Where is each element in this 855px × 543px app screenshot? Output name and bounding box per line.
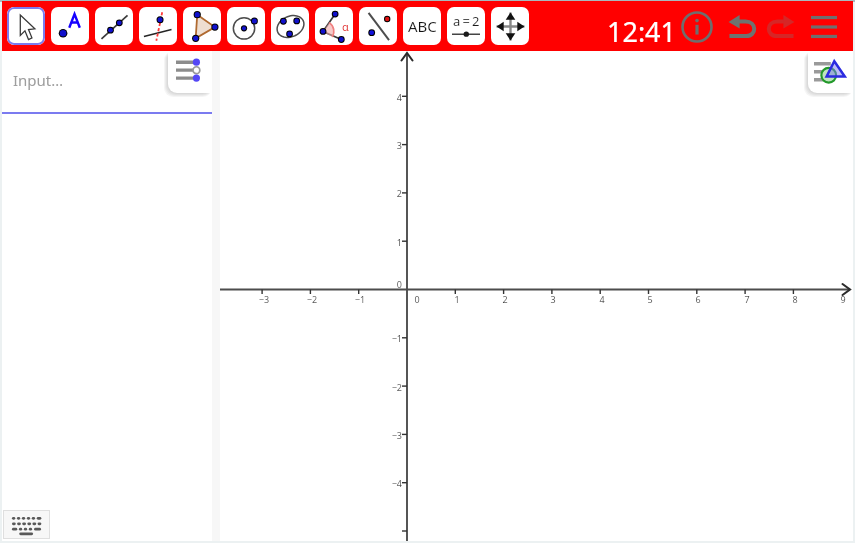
staticText: −3 bbox=[362, 429, 402, 441]
staticText: 0 bbox=[397, 293, 437, 305]
staticText: 0 bbox=[362, 278, 402, 290]
staticText: −1 bbox=[362, 332, 402, 344]
button[interactable]: Reflect about line bbox=[359, 7, 397, 45]
button[interactable]: Move graphics view bbox=[491, 7, 529, 45]
staticText: 9 bbox=[823, 293, 855, 305]
staticText: 5 bbox=[630, 293, 670, 305]
button[interactable]: Settings bbox=[168, 51, 212, 93]
staticText: 8 bbox=[775, 293, 815, 305]
staticText: 12:41 bbox=[607, 13, 677, 50]
button[interactable]: Info bbox=[679, 9, 715, 45]
button[interactable]: Menu bbox=[804, 8, 844, 46]
button[interactable]: Line bbox=[95, 7, 133, 45]
button[interactable]: Undo bbox=[724, 10, 760, 44]
staticText: 1 bbox=[362, 236, 402, 248]
staticText: −2 bbox=[362, 381, 402, 393]
staticText: −4 bbox=[362, 477, 402, 489]
button[interactable]: Circle with centre through point bbox=[227, 7, 265, 45]
staticText: −2 bbox=[292, 293, 332, 305]
button[interactable]: Redo bbox=[762, 10, 798, 44]
staticText: 2 bbox=[362, 187, 402, 199]
staticText: 7 bbox=[727, 293, 767, 305]
staticText: −1 bbox=[340, 293, 380, 305]
button[interactable]: Polygon bbox=[183, 7, 221, 45]
staticText: Input… bbox=[13, 70, 64, 90]
staticText: 4 bbox=[582, 293, 622, 305]
staticText: 4 bbox=[362, 91, 402, 103]
staticText: −3 bbox=[244, 293, 284, 305]
staticText: 3 bbox=[362, 139, 402, 151]
button[interactable]: Perpendicular line bbox=[139, 7, 177, 45]
button[interactable]: Move bbox=[7, 7, 45, 45]
staticText: 6 bbox=[678, 293, 718, 305]
button[interactable]: Graphics settings bbox=[808, 51, 853, 93]
button[interactable]: Show keyboard bbox=[3, 510, 50, 539]
button[interactable]: Conic through 5 points bbox=[271, 7, 309, 45]
staticText: 3 bbox=[533, 293, 573, 305]
staticText: 1 bbox=[437, 293, 477, 305]
button[interactable]: Point bbox=[51, 7, 89, 45]
staticText: α bbox=[342, 19, 349, 34]
staticText: a = 2 bbox=[453, 12, 480, 30]
button[interactable]: Slider bbox=[447, 7, 485, 45]
button[interactable]: Angle bbox=[315, 7, 353, 45]
button[interactable]: Text bbox=[403, 7, 441, 45]
staticText: 2 bbox=[485, 293, 525, 305]
staticText: ABC bbox=[408, 16, 437, 36]
